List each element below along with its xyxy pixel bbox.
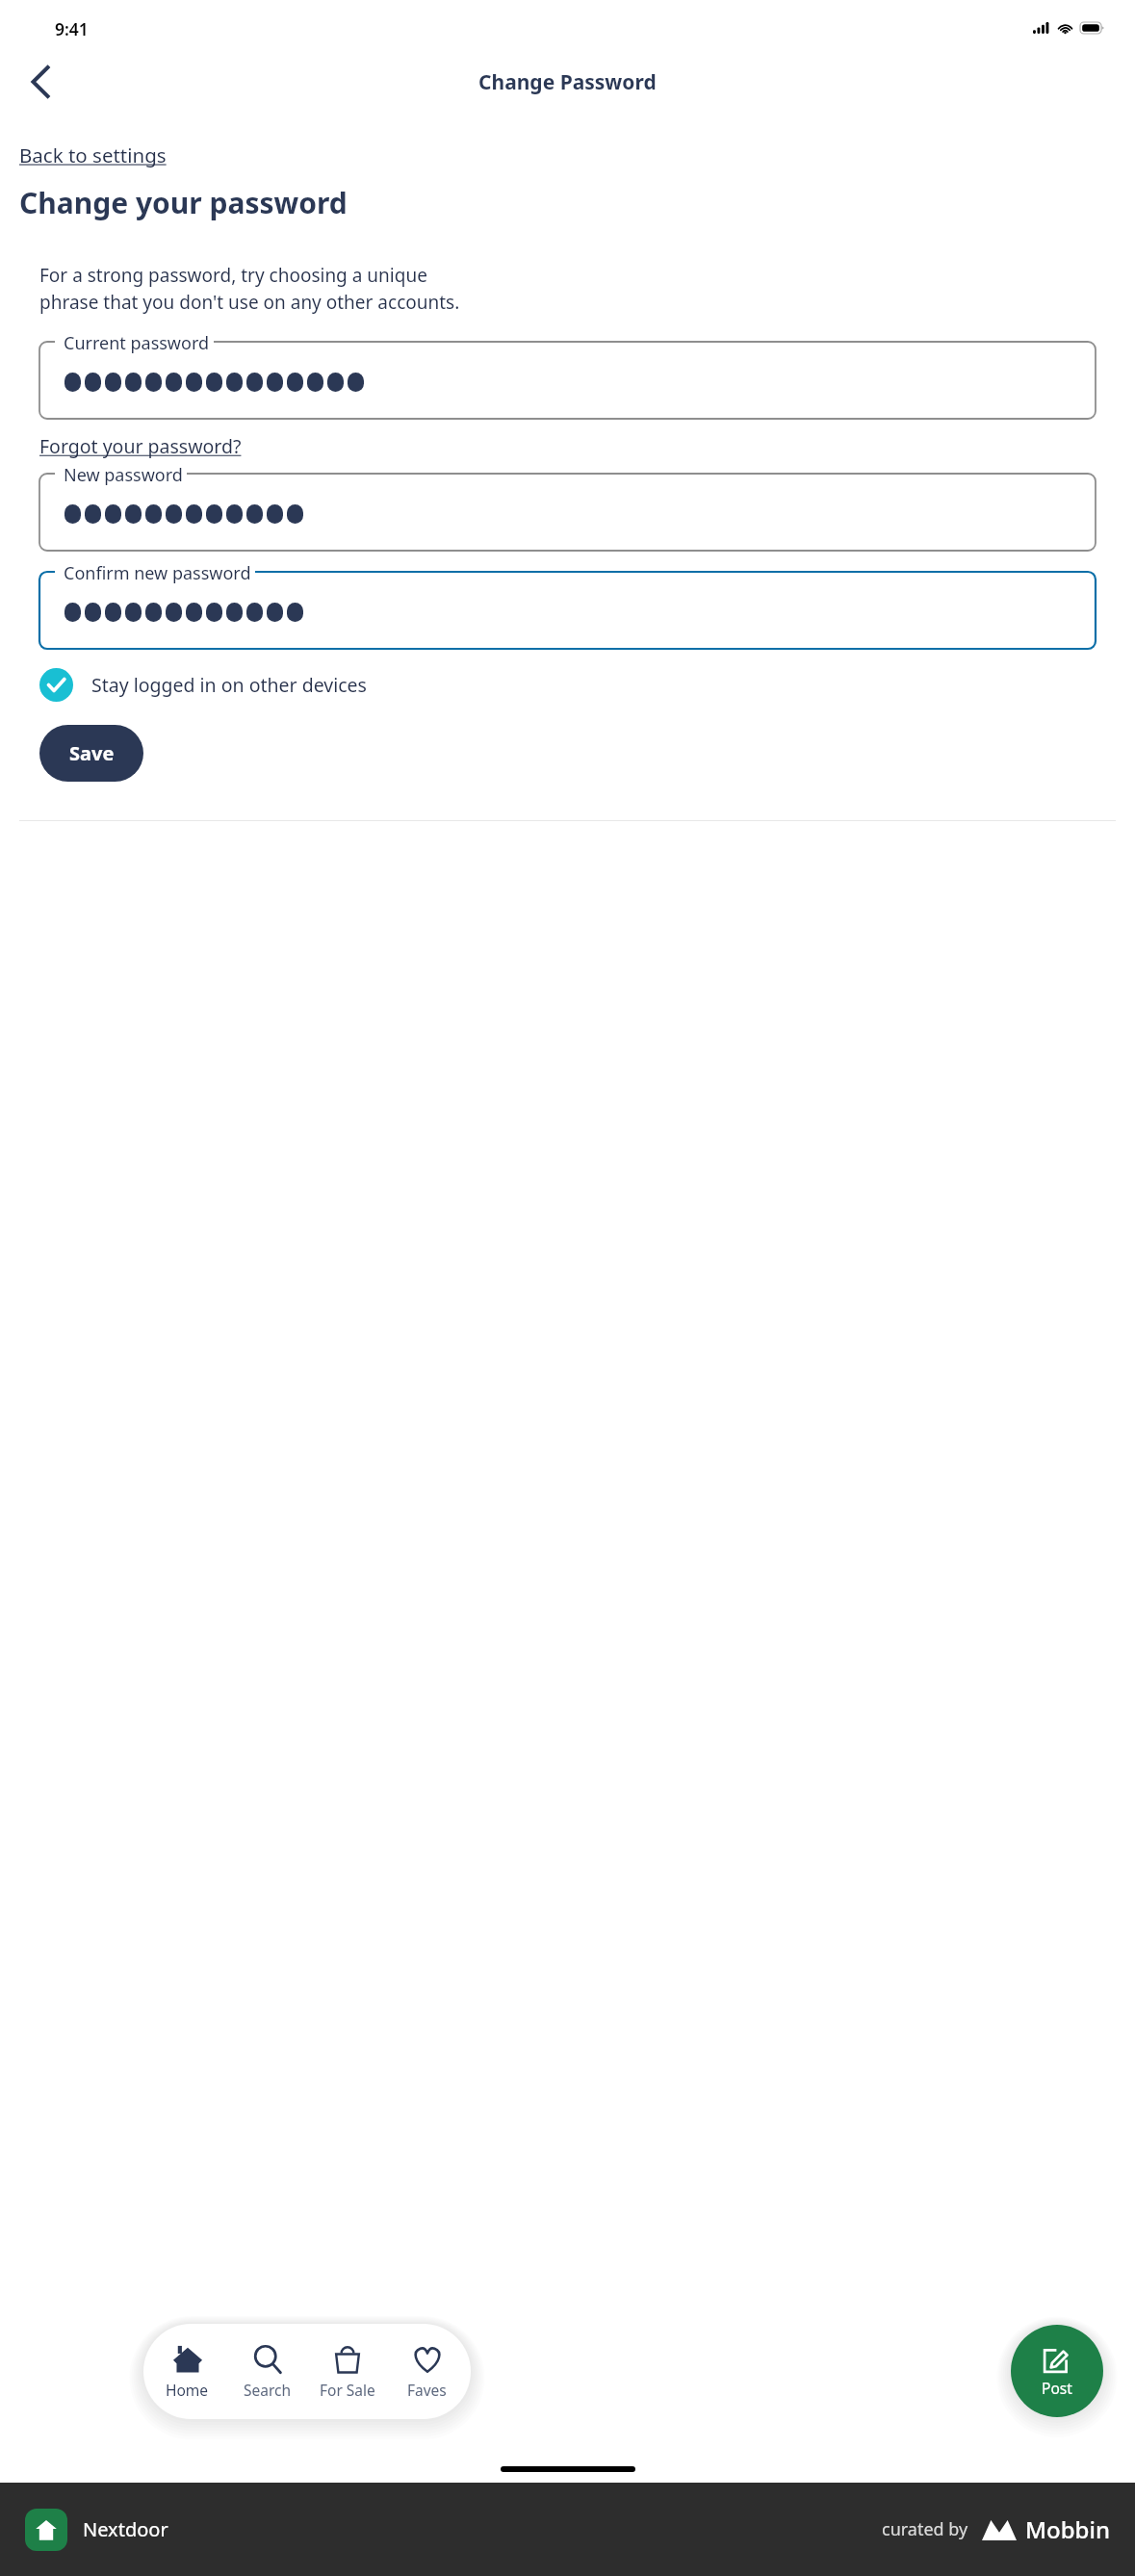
button[interactable]: Home [151, 2344, 223, 2400]
staticText: Stay logged in on other devices [91, 672, 367, 698]
staticText: Search [244, 2380, 292, 2400]
staticText: Confirm new password [64, 561, 251, 585]
staticText: Nextdoor [83, 2516, 168, 2542]
staticText: Save [69, 740, 115, 766]
button[interactable]: New password [39, 474, 1096, 551]
button[interactable]: For Sale [311, 2344, 383, 2400]
staticText: curated by [882, 2517, 968, 2541]
staticText: Forgot your password? [39, 433, 242, 459]
button[interactable]: Post [1011, 2325, 1103, 2417]
button[interactable]: Save [39, 725, 143, 782]
staticText: Mobbin [1025, 2513, 1110, 2545]
staticText: Current password [64, 331, 210, 355]
staticText: For a strong password, try choosing a un… [39, 263, 460, 315]
staticText: 9:41 [55, 17, 89, 40]
staticText: Post [1042, 2378, 1072, 2398]
button[interactable]: Stay logged in on other devices [39, 668, 367, 702]
staticText: Back to settings [19, 142, 167, 168]
staticText: Home [166, 2380, 209, 2400]
staticText: Change Password [478, 68, 657, 96]
button[interactable]: Forgot your password? [39, 430, 242, 462]
button[interactable]: Confirm new password [39, 572, 1096, 649]
staticText: New password [64, 463, 183, 487]
staticText: Faves [407, 2380, 447, 2400]
button[interactable]: Current password [39, 342, 1096, 419]
button[interactable]: Faves [391, 2344, 463, 2400]
button[interactable]: Back to settings [19, 139, 167, 171]
staticText: Change your password [19, 183, 348, 222]
button[interactable]: Back [13, 55, 67, 109]
staticText: For Sale [320, 2380, 375, 2400]
button[interactable]: Search [231, 2344, 303, 2400]
